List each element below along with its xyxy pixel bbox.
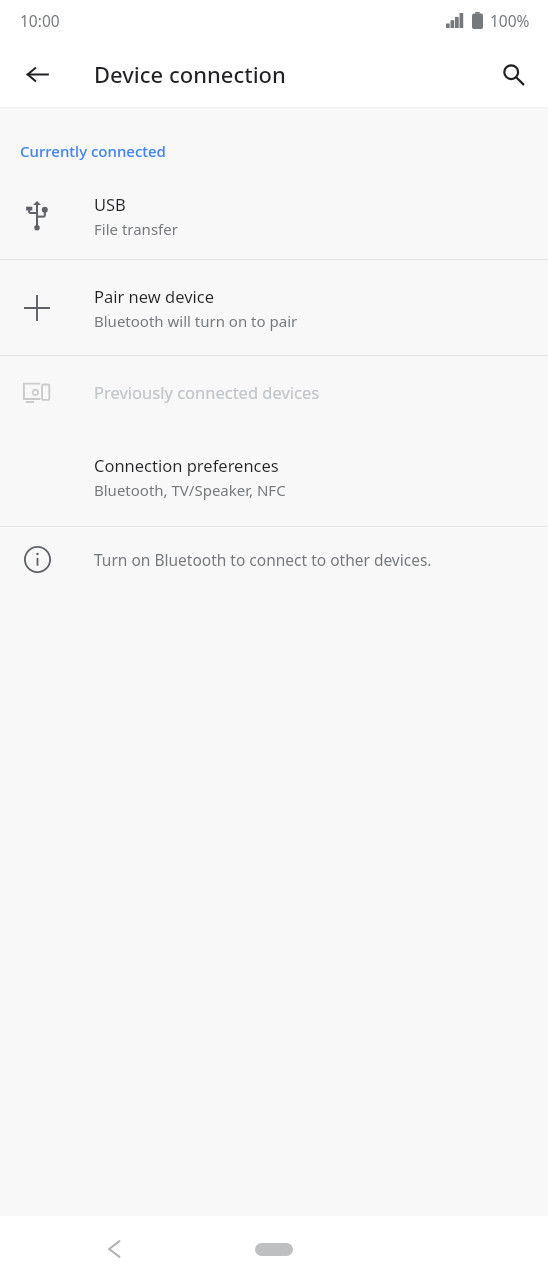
staticText: Device connection (94, 59, 286, 89)
staticText: Bluetooth will turn on to pair (94, 311, 298, 331)
staticText: Bluetooth, TV/Speaker, NFC (94, 480, 286, 500)
button[interactable]: Back (90, 1225, 138, 1273)
staticText: Currently connected (20, 141, 166, 161)
staticText: 10:00 (20, 10, 60, 31)
button[interactable]: Connection preferences (0, 428, 548, 526)
button[interactable]: Previously connected devices (0, 356, 548, 428)
staticText: Turn on Bluetooth to connect to other de… (94, 549, 432, 570)
button[interactable]: Home (246, 1234, 302, 1264)
button[interactable]: Back (14, 51, 60, 97)
button[interactable]: USB (0, 172, 548, 259)
button[interactable]: Pair new device (0, 260, 548, 355)
staticText: Previously connected devices (94, 381, 320, 403)
staticText: 100% (490, 10, 530, 31)
staticText: Pair new device (94, 285, 215, 307)
button[interactable]: Search (490, 51, 536, 97)
staticText: Connection preferences (94, 454, 279, 476)
staticText: File transfer (94, 219, 178, 239)
staticText: USB (94, 193, 126, 215)
